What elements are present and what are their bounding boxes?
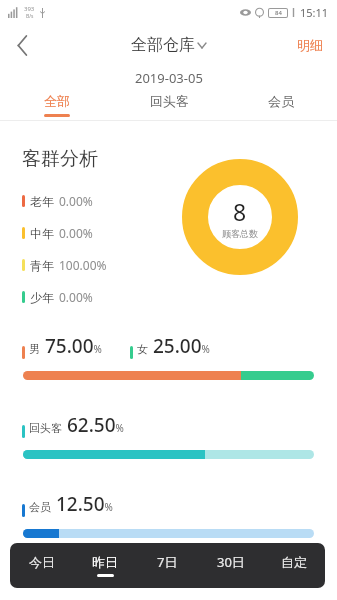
button[interactable]: 30日 — [199, 543, 262, 588]
staticText: 今日 — [29, 554, 55, 570]
staticText: 会员 12.50% — [29, 491, 113, 517]
staticText: 中年 — [30, 226, 54, 241]
button[interactable]: 昨日 — [73, 543, 136, 588]
button[interactable]: 7日 — [136, 543, 199, 588]
staticText: 青年 — [30, 258, 54, 273]
staticText: 7日 — [157, 553, 178, 571]
staticText: 老年 — [30, 194, 54, 209]
button[interactable]: 自定 — [262, 543, 325, 588]
staticText: 全部 — [44, 93, 70, 109]
staticText: 女 25.00% — [137, 333, 210, 359]
staticText: 男 75.00% — [29, 333, 102, 359]
staticText: 回头客 62.50% — [29, 412, 124, 438]
staticText: 393 — [24, 5, 35, 13]
staticText: 顾客总数 — [222, 228, 258, 239]
staticText: 2019-03-05 — [135, 69, 203, 87]
button[interactable]: 全部仓库 — [131, 35, 206, 55]
staticText: 0.00% — [59, 225, 93, 241]
staticText: 少年 — [30, 290, 54, 305]
staticText: 84 — [275, 9, 282, 17]
button[interactable]: 会员 — [225, 90, 337, 120]
button[interactable]: 今日 — [10, 543, 73, 588]
button[interactable]: 全部 — [0, 90, 113, 120]
staticText: 明细 — [297, 37, 323, 53]
staticText: 客群分析 — [22, 147, 98, 171]
button[interactable]: 回头客 — [113, 90, 225, 120]
staticText: 昨日 — [92, 554, 118, 570]
staticText: 15:11 — [300, 5, 329, 20]
staticText: 0.00% — [59, 193, 93, 209]
staticText: 30日 — [217, 553, 245, 571]
staticText: 全部仓库 — [131, 35, 195, 55]
staticText: B/s — [26, 13, 34, 20]
button[interactable]: Back — [0, 24, 44, 66]
staticText: 100.00% — [59, 257, 107, 273]
button[interactable]: 明细 — [283, 29, 337, 61]
staticText: 回头客 — [150, 93, 189, 109]
staticText: 自定 — [281, 554, 307, 570]
staticText: 会员 — [268, 93, 294, 109]
staticText: 8 — [233, 196, 247, 227]
staticText: 0.00% — [59, 289, 93, 305]
